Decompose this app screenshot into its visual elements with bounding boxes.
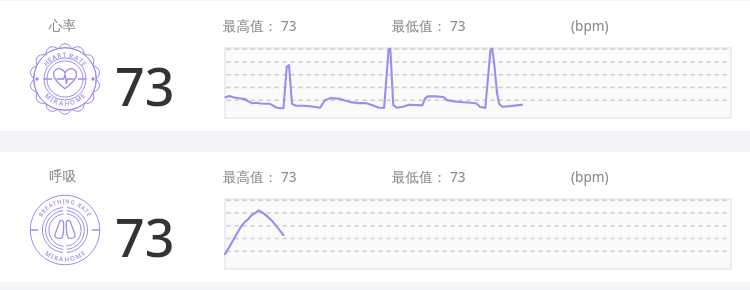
staticText: 呼吸 [49, 168, 76, 185]
other: Breathing rate badge [30, 195, 100, 265]
staticText: 73 [115, 201, 175, 272]
staticText: 最低值： 73 [392, 16, 466, 35]
staticText: (bpm) [571, 16, 609, 35]
staticText: 最高值： 73 [223, 167, 297, 186]
button[interactable]: 心率 [0, 1, 750, 131]
staticText: 心率 [49, 17, 76, 34]
staticText: 最高值： 73 [223, 16, 297, 35]
staticText: 最低值： 73 [392, 167, 466, 186]
button[interactable]: 呼吸 [0, 152, 750, 282]
staticText: (bpm) [571, 167, 609, 186]
other: Heart rate badge [30, 44, 100, 114]
staticText: 73 [115, 50, 175, 121]
